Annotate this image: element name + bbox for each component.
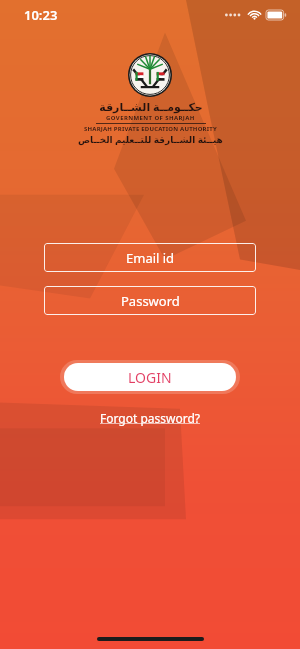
staticText: SHARJAH PRIVATE EDUCATION AUTHORITY [84,125,217,133]
staticText: هيــئة الشــارقة للتــعليم الخــاص [78,133,223,145]
button[interactable]: LOGIN [64,363,236,391]
staticText: حكــومــة الشــارقة [99,99,203,114]
button[interactable]: Forgot password? [94,408,207,428]
staticText: Password [121,292,180,310]
staticText: Email id [126,249,175,267]
button[interactable]: Password [44,286,256,315]
staticText: LOGIN [128,368,172,387]
staticText: GOVERNMENT OF SHARJAH [106,114,195,122]
staticText: 10:23 [24,6,58,24]
button[interactable]: Email id [44,243,256,272]
staticText: Forgot password? [100,410,201,426]
